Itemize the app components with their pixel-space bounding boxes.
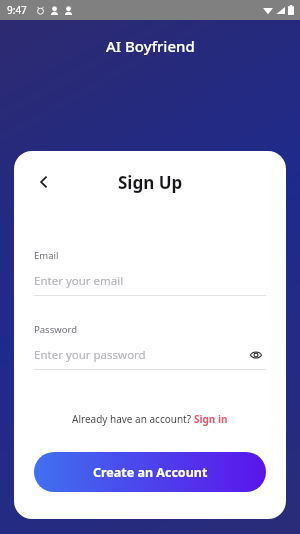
button[interactable]: Sign in [194,412,228,426]
button[interactable]: Back [28,166,60,198]
staticText: Enter your email [34,273,124,289]
staticText: AI Boyfriend [106,36,195,56]
staticText: Enter your password [34,347,146,363]
button[interactable]: Enter your password [34,346,266,364]
staticText: Email [34,249,59,262]
button[interactable]: Show password [246,346,266,364]
staticText: Password [34,323,77,336]
button[interactable]: Create an Account [34,452,266,492]
button[interactable]: Enter your email [34,272,266,290]
staticText: 9:47 [7,3,27,17]
staticText: Sign in [194,412,228,426]
staticText: Sign Up [118,171,183,194]
staticText: Create an Account [93,464,208,481]
staticText: Already have an account? [72,412,194,426]
